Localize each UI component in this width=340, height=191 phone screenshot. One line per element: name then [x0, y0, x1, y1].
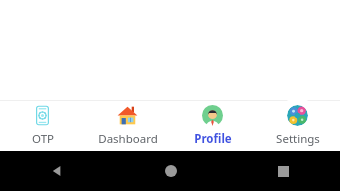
staticText: OTP — [32, 131, 54, 147]
staticText: Profile — [194, 131, 232, 147]
button[interactable]: OTP — [0, 101, 85, 151]
staticText: Dashboard — [98, 131, 158, 147]
button[interactable]: Recent apps — [227, 151, 340, 191]
button[interactable]: Back — [0, 151, 114, 191]
button[interactable]: Settings — [255, 101, 340, 151]
button[interactable]: Dashboard — [85, 101, 170, 151]
button[interactable]: Home — [114, 151, 227, 191]
staticText: Settings — [276, 131, 320, 147]
button[interactable]: Profile — [170, 101, 255, 151]
